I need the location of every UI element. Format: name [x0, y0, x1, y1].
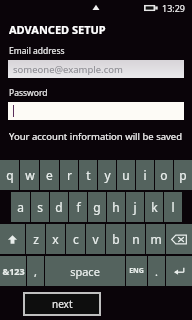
button[interactable]: o — [155, 160, 173, 190]
staticText: space — [70, 264, 100, 279]
staticText: t — [86, 167, 91, 183]
button[interactable]: f — [69, 192, 87, 222]
button[interactable]: . — [148, 256, 165, 286]
staticText: n — [132, 231, 140, 247]
staticText: w — [25, 167, 35, 183]
button[interactable]: v — [86, 224, 105, 254]
staticText: , — [34, 264, 37, 279]
button[interactable]: s — [31, 192, 49, 222]
button[interactable]: Enter — [166, 256, 192, 286]
staticText: ADVANCED SETUP — [9, 22, 106, 37]
staticText: someone@example.com — [13, 63, 123, 76]
staticText: e — [46, 167, 53, 183]
button[interactable]: r — [60, 160, 78, 190]
button[interactable]: l — [164, 192, 182, 222]
staticText: l — [171, 199, 175, 215]
staticText: o — [160, 167, 168, 183]
button[interactable]: z — [26, 224, 45, 254]
staticText: b — [112, 231, 120, 247]
button[interactable] — [8, 102, 184, 120]
button[interactable]: someone@example.com — [8, 60, 184, 78]
button[interactable]: g — [88, 192, 106, 222]
button[interactable]: i — [136, 160, 154, 190]
staticText: k — [151, 199, 158, 215]
staticText: q — [6, 167, 14, 183]
staticText: h — [112, 199, 120, 215]
button[interactable]: w — [20, 160, 39, 190]
staticText: m — [150, 231, 162, 247]
button[interactable]: Shift — [0, 224, 25, 254]
staticText: c — [73, 231, 79, 247]
staticText: p — [179, 167, 187, 183]
staticText: 13:29 — [162, 2, 186, 14]
button[interactable]: ENG — [126, 256, 147, 286]
button[interactable]: p — [174, 160, 192, 190]
staticText: v — [92, 231, 99, 247]
button[interactable]: m — [146, 224, 165, 254]
staticText: u — [122, 167, 130, 183]
staticText: y — [104, 167, 111, 183]
button[interactable]: Backspace — [166, 224, 192, 254]
button[interactable]: next — [24, 293, 100, 315]
staticText: f — [76, 199, 81, 215]
button[interactable]: t — [79, 160, 97, 190]
button[interactable]: space — [45, 256, 125, 286]
button[interactable]: x — [46, 224, 65, 254]
button[interactable]: b — [106, 224, 125, 254]
button[interactable]: q — [0, 160, 19, 190]
staticText: Email address — [9, 45, 65, 57]
staticText: . — [155, 264, 158, 279]
staticText: s — [37, 199, 43, 215]
button[interactable]: u — [117, 160, 135, 190]
button[interactable]: &123 — [0, 256, 26, 286]
staticText: d — [55, 199, 63, 215]
staticText: Password — [9, 87, 48, 99]
button[interactable]: y — [98, 160, 116, 190]
button[interactable]: j — [126, 192, 144, 222]
staticText: x — [52, 231, 59, 247]
staticText: i — [143, 167, 147, 183]
staticText: g — [93, 199, 101, 215]
button[interactable]: n — [126, 224, 145, 254]
button[interactable]: k — [145, 192, 163, 222]
button[interactable]: e — [40, 160, 59, 190]
staticText: r — [67, 167, 72, 183]
button[interactable]: c — [66, 224, 85, 254]
button[interactable]: h — [107, 192, 125, 222]
button[interactable]: d — [50, 192, 68, 222]
staticText: z — [33, 231, 39, 247]
staticText: a — [17, 199, 24, 215]
button[interactable]: , — [27, 256, 44, 286]
staticText: Your account information will be saved — [9, 130, 183, 143]
staticText: &123 — [2, 265, 25, 277]
staticText: j — [133, 199, 137, 215]
button[interactable]: a — [11, 192, 30, 222]
staticText: ENG — [129, 266, 144, 276]
staticText: next — [52, 297, 73, 311]
